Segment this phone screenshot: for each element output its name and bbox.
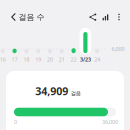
staticText: 걸음 수 [18, 12, 44, 22]
staticText: 21 [59, 56, 65, 63]
button[interactable]: Back [5, 7, 21, 27]
staticText: 17 [12, 56, 18, 63]
staticText: 24 [94, 56, 100, 63]
staticText: 20 [47, 56, 53, 63]
button[interactable]: More options [111, 8, 126, 26]
staticText: 18 [23, 56, 29, 63]
staticText: 3/23 [80, 56, 91, 63]
staticText: 걸음 [71, 90, 81, 97]
button[interactable]: Statistics [98, 8, 113, 26]
button[interactable]: Share [85, 8, 100, 26]
staticText: 34,909 [35, 84, 68, 98]
staticText: 0 [14, 118, 17, 126]
staticText: 6,000 [111, 45, 124, 53]
staticText: 22 [71, 56, 77, 63]
staticText: 19 [35, 56, 41, 63]
staticText: 36,000 [102, 118, 118, 126]
staticText: 16 [0, 56, 6, 63]
